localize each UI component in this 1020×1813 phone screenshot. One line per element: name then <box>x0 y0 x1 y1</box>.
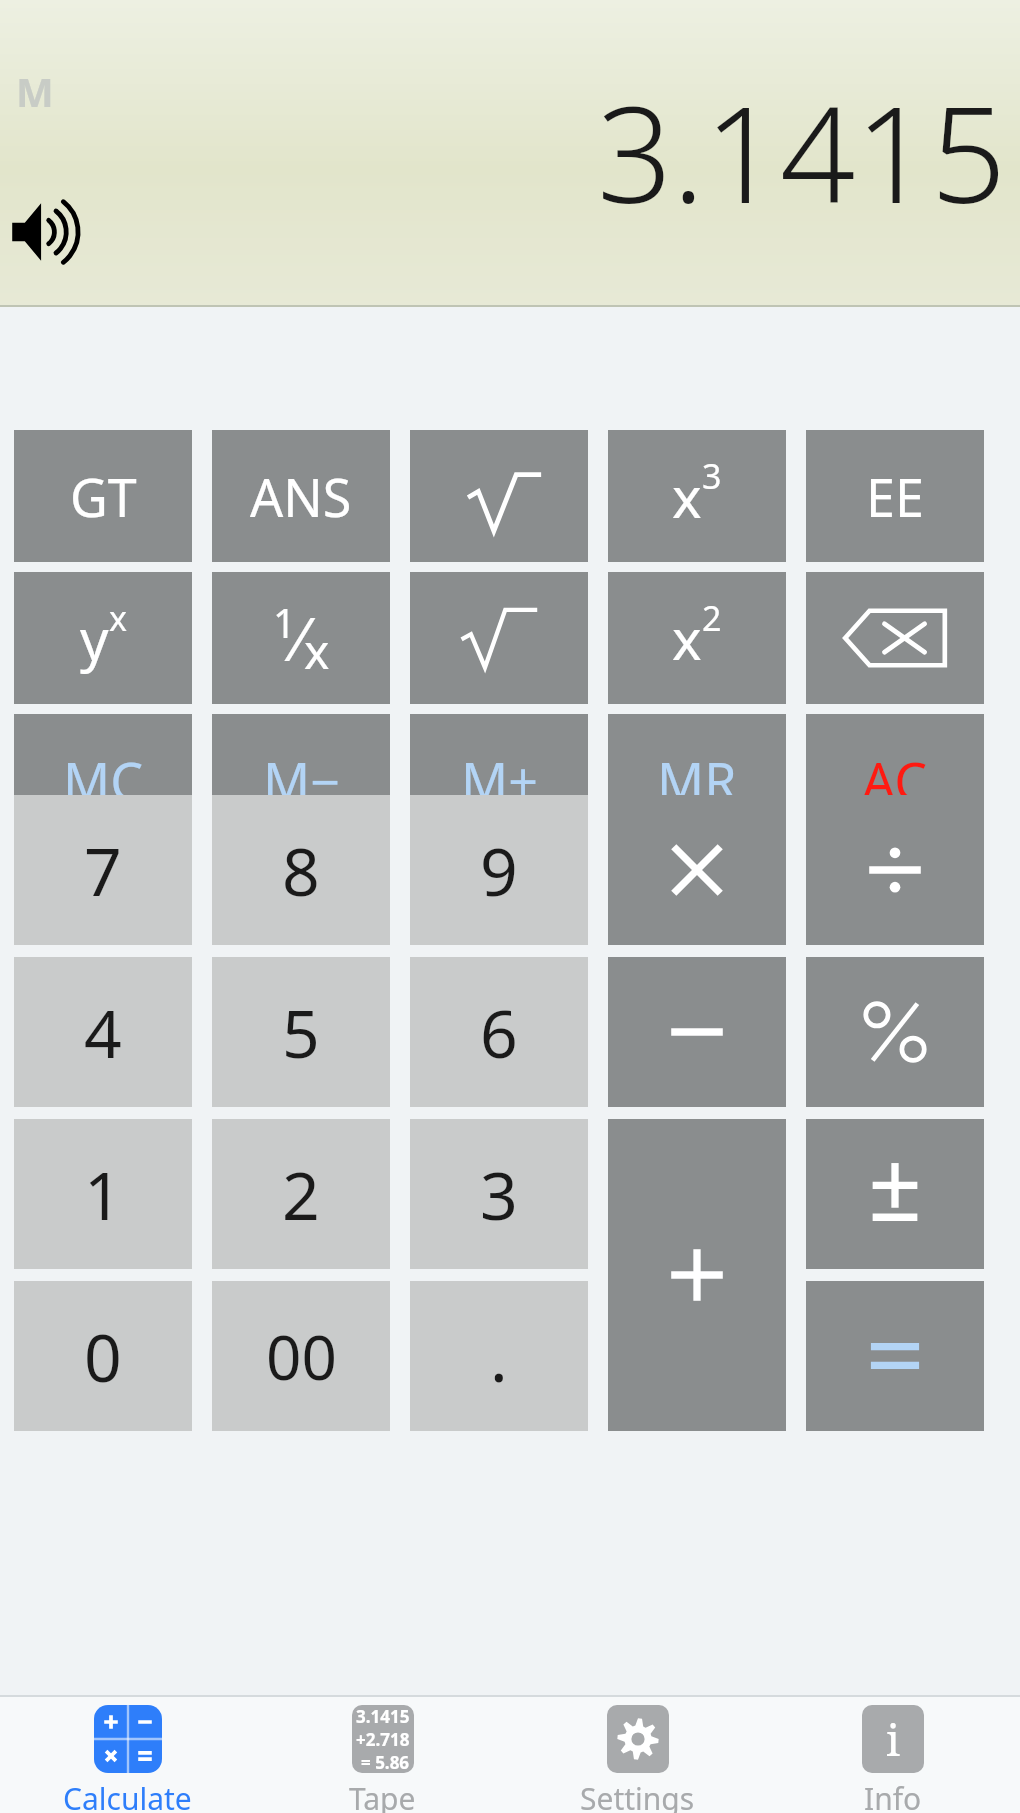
other: Backspace <box>842 607 948 669</box>
staticText: 6 <box>480 987 518 1077</box>
button[interactable]: x <box>608 430 786 562</box>
staticText: y <box>80 600 109 676</box>
other: Multiply <box>654 827 740 913</box>
button[interactable]: Add <box>608 1119 786 1431</box>
staticText: ⁄ <box>296 597 304 679</box>
staticText: 4 <box>84 987 122 1077</box>
staticText: Settings <box>580 1778 695 1813</box>
button[interactable]: x <box>608 572 786 704</box>
button[interactable]: y <box>14 572 192 704</box>
button[interactable]: 2 <box>212 1119 390 1269</box>
button[interactable]: 9 <box>410 795 588 945</box>
staticText: 3 <box>480 1149 518 1239</box>
other: Equals <box>852 1313 938 1399</box>
staticText: 00 <box>266 1314 337 1398</box>
staticText: 3 <box>702 453 722 499</box>
staticText: 1 <box>84 1149 122 1239</box>
staticText: 0 <box>84 1311 122 1401</box>
button[interactable]: i <box>765 1697 1020 1813</box>
button[interactable]: MC <box>14 714 192 846</box>
other: Subtract <box>654 989 740 1075</box>
button[interactable]: 0 <box>14 1281 192 1431</box>
button[interactable]: Backspace <box>806 572 984 704</box>
button[interactable]: Subtract <box>608 957 786 1107</box>
button[interactable]: M+ <box>410 714 588 846</box>
other: Plus minus <box>852 1151 938 1237</box>
button[interactable]: 4 <box>14 957 192 1107</box>
other: Cube root <box>456 458 542 534</box>
staticText: 8 <box>282 825 320 915</box>
staticText: 2 <box>282 1149 320 1239</box>
staticText: M+ <box>461 745 538 816</box>
other: Add <box>654 1232 740 1318</box>
button[interactable]: Percent <box>806 957 984 1107</box>
staticText: +2.718 <box>356 1728 410 1751</box>
staticText: GT <box>70 461 137 532</box>
staticText: x <box>304 618 330 683</box>
button[interactable]: Cube root <box>410 430 588 562</box>
staticText: 2 <box>702 595 722 641</box>
staticText: . <box>490 1311 508 1401</box>
button[interactable]: . <box>410 1281 588 1431</box>
staticText: M− <box>263 745 340 816</box>
staticText: i <box>886 1709 901 1769</box>
staticText: x <box>109 595 127 641</box>
button[interactable]: Multiply <box>608 795 786 945</box>
other: Square root <box>460 606 538 670</box>
button[interactable]: Equals <box>806 1281 984 1431</box>
other: Divide <box>852 827 938 913</box>
button[interactable]: 1 <box>14 1119 192 1269</box>
staticText: AC <box>862 745 928 816</box>
staticText: = 5.86 <box>361 1751 410 1773</box>
staticText: x <box>672 458 702 534</box>
button[interactable]: Divide <box>806 795 984 945</box>
button[interactable]: 5 <box>212 957 390 1107</box>
button[interactable]: AC <box>806 714 984 846</box>
other: Percent <box>852 989 938 1075</box>
staticText: 5 <box>282 987 320 1077</box>
staticText: 3.1415 <box>356 1705 410 1728</box>
button[interactable]: M− <box>212 714 390 846</box>
button[interactable]: Plus minus <box>806 1119 984 1269</box>
staticText: Info <box>864 1778 922 1813</box>
staticText: MC <box>63 745 144 816</box>
button[interactable]: 1 <box>212 572 390 704</box>
staticText: x <box>672 600 702 676</box>
staticText: 1 <box>273 595 296 649</box>
button[interactable]: Sound <box>10 196 84 268</box>
staticText: ANS <box>250 461 352 532</box>
staticText: EE <box>866 461 924 532</box>
staticText: MR <box>657 745 737 816</box>
button[interactable]: 3 <box>410 1119 588 1269</box>
button[interactable]: MR <box>608 714 786 846</box>
staticText: M <box>16 64 54 118</box>
button[interactable]: EE <box>806 430 984 562</box>
button[interactable]: ANS <box>212 430 390 562</box>
button[interactable]: GT <box>14 430 192 562</box>
button[interactable]: Square root <box>410 572 588 704</box>
staticText: 3.1415 <box>596 62 1006 242</box>
button[interactable]: Calculate <box>0 1697 255 1813</box>
button[interactable]: Settings <box>510 1697 765 1813</box>
button[interactable]: 7 <box>14 795 192 945</box>
button[interactable]: 8 <box>212 795 390 945</box>
button[interactable]: 6 <box>410 957 588 1107</box>
button[interactable]: 00 <box>212 1281 390 1431</box>
staticText: Calculate <box>63 1778 192 1813</box>
staticText: Tape <box>349 1778 416 1813</box>
staticText: 7 <box>84 825 122 915</box>
button[interactable]: 3.1415 <box>255 1697 510 1813</box>
staticText: 9 <box>480 825 518 915</box>
